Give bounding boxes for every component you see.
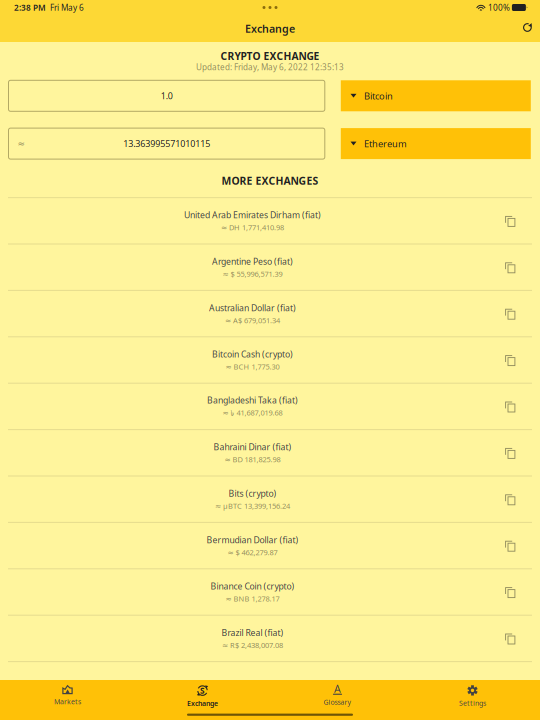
staticText: ≈ ৳ 41,687,019.68 [222, 407, 282, 419]
staticText: Exchange [187, 699, 218, 708]
staticText: 2:38 PM [14, 2, 46, 13]
staticText: ≈ [17, 138, 24, 149]
staticText: 13.363995571010115 [123, 137, 210, 150]
staticText: A [334, 681, 341, 696]
button[interactable]: A [270, 680, 405, 720]
staticText: 1.0 [161, 90, 173, 102]
staticText: ≈ BCH 1,775.30 [225, 362, 279, 372]
button[interactable]: Markets [0, 680, 135, 720]
staticText: Bahraini Dinar (fiat) [213, 441, 291, 453]
staticText: Bitcoin Cash (crypto) [212, 348, 293, 360]
staticText: Fri May 6 [46, 2, 84, 13]
button[interactable]: United Arab Emirates Dirham (fiat) [0, 198, 540, 243]
staticText: Binance Coin (crypto) [210, 580, 294, 592]
staticText: ≈ A$ 679,051.34 [225, 315, 280, 325]
staticText: United Arab Emirates Dirham (fiat) [184, 209, 321, 221]
staticText: CRYPTO EXCHANGE [220, 49, 319, 63]
staticText: Bermudian Dollar (fiat) [206, 534, 298, 546]
button[interactable]: Bangladeshi Taka (fiat) [0, 384, 540, 429]
staticText: ≈ DH 1,771,410.98 [221, 222, 284, 233]
staticText: Argentine Peso (fiat) [212, 255, 293, 267]
staticText: Ethereum [364, 137, 407, 150]
staticText: Bangladeshi Taka (fiat) [207, 394, 298, 406]
staticText: MORE EXCHANGES [221, 173, 318, 188]
staticText: Bitcoin [364, 89, 393, 102]
staticText: S [200, 685, 205, 696]
button[interactable]: Binance Coin (crypto) [0, 569, 540, 615]
staticText: Markets [54, 697, 81, 706]
staticText: ≈ BNB 1,278.17 [225, 594, 279, 604]
button[interactable]: Refresh [523, 21, 540, 36]
staticText: ≈ $ 462,279.87 [227, 547, 277, 557]
button[interactable]: Australian Dollar (fiat) [0, 291, 540, 336]
staticText: 100% [486, 2, 512, 13]
staticText: ≈ $ 55,996,571.39 [222, 269, 282, 279]
staticText: ≈ R$ 2,438,007.08 [222, 640, 283, 650]
staticText: Brazil Real (fiat) [221, 627, 283, 638]
staticText: ≈ µBTC 13,399,156.24 [215, 501, 290, 511]
staticText: Australian Dollar (fiat) [209, 302, 296, 314]
staticText: Updated: Friday, May 6, 2022 12:35:13 [196, 62, 344, 73]
button[interactable]: Settings [405, 680, 540, 720]
button[interactable]: Bermudian Dollar (fiat) [0, 523, 540, 568]
button[interactable]: Argentine Peso (fiat) [0, 244, 540, 290]
button[interactable]: Bitcoin [341, 80, 531, 111]
button[interactable]: Bitcoin Cash (crypto) [0, 337, 540, 383]
button[interactable]: S [135, 680, 270, 720]
staticText: ≈ BD 181,825.98 [224, 454, 280, 465]
staticText: Settings [459, 698, 486, 708]
button[interactable]: Ethereum [341, 128, 531, 159]
button[interactable]: Bahraini Dinar (fiat) [0, 430, 540, 475]
staticText: Glossary [323, 697, 351, 707]
button[interactable]: Brazil Real (fiat) [0, 616, 540, 661]
button[interactable]: Bits (crypto) [0, 476, 540, 522]
staticText: Bits (crypto) [228, 487, 276, 499]
staticText: Exchange [245, 21, 295, 36]
